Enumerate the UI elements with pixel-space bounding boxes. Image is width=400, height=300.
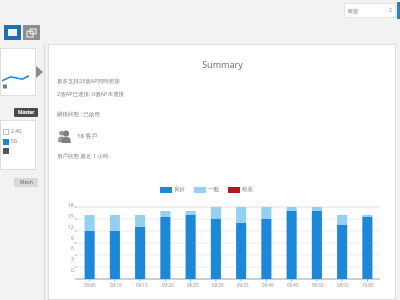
staticText: 09:40 — [262, 282, 274, 288]
staticText: 網格狀態 : 已啟用 — [57, 110, 100, 118]
staticText: 09:50 — [312, 282, 324, 288]
staticText: 一般 — [208, 186, 219, 193]
staticText: 帳號 — [348, 8, 358, 14]
staticText: 3 — [71, 256, 74, 263]
staticText: 09:10 — [110, 282, 122, 288]
staticText: 09:55 — [337, 282, 349, 288]
staticText: 10:00 — [362, 282, 374, 288]
staticText: 09:20 — [162, 282, 174, 288]
staticText: 6 — [71, 245, 74, 252]
staticText: Master — [18, 109, 35, 116]
staticText: 2.4G — [11, 128, 22, 135]
staticText: 9 — [71, 235, 74, 242]
staticText: 較差 — [242, 186, 253, 193]
staticText: 5G — [11, 138, 18, 145]
staticText: Mesh — [20, 179, 33, 186]
staticText: 09:30 — [212, 282, 224, 288]
staticText: 2 — [389, 7, 392, 14]
button[interactable]: Split panel view — [23, 25, 40, 40]
staticText: 09:25 — [187, 282, 199, 288]
staticText: 15 — [68, 213, 74, 220]
button[interactable]: Master device topology — [0, 48, 36, 96]
button[interactable]: Account menu — [344, 3, 396, 18]
staticText: 09:45 — [287, 282, 299, 288]
staticText: 18 客戶 — [77, 132, 98, 140]
staticText: Summary — [202, 58, 243, 70]
staticText: 09:15 — [136, 282, 148, 288]
staticText: 18 — [68, 202, 74, 209]
button[interactable]: Single panel view — [4, 25, 21, 40]
staticText: 良好 — [174, 186, 185, 193]
staticText: 用戶狀態 最近 1 小時 — [57, 152, 109, 160]
staticText: 09:05 — [84, 282, 96, 288]
staticText: 09:35 — [237, 282, 249, 288]
staticText: 0 — [71, 267, 74, 274]
staticText: 最多支持25個AP同時密接 — [57, 77, 120, 85]
staticText: 12 — [68, 224, 74, 231]
staticText: 2個AP已連接, 0個AP未連接 — [57, 90, 124, 98]
